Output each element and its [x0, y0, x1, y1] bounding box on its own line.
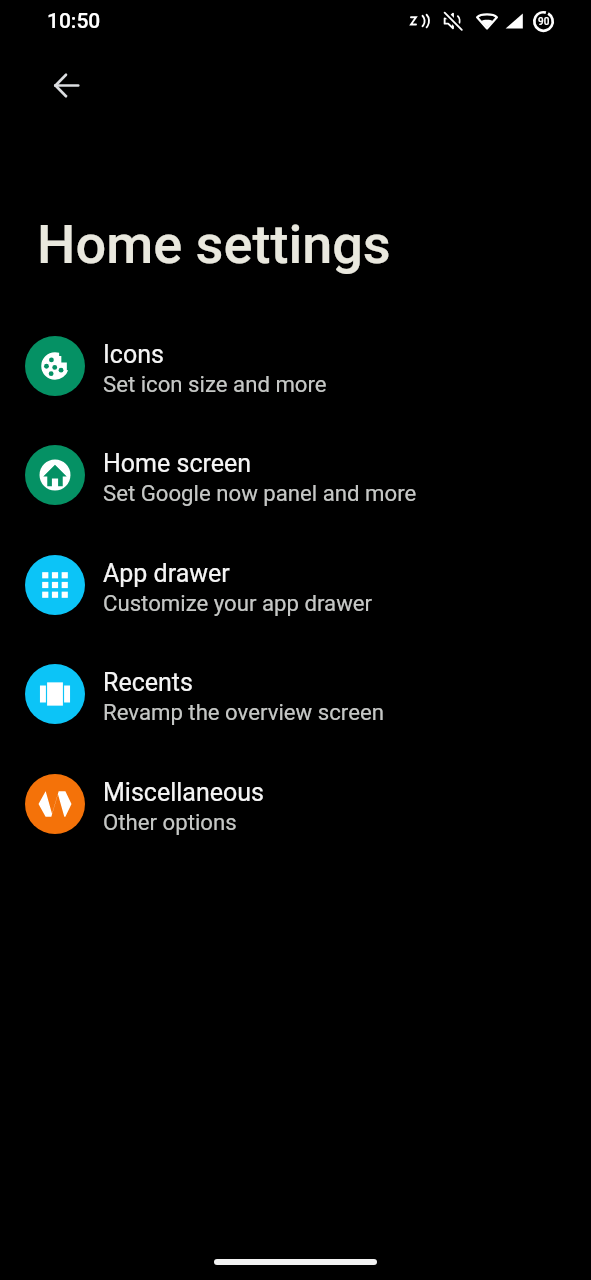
staticText: Icons — [103, 340, 164, 369]
staticText: Home screen — [103, 449, 252, 478]
staticText: Recents — [103, 668, 193, 697]
staticText: Set Google now panel and more — [103, 480, 417, 506]
staticText: 90 — [538, 16, 550, 28]
staticText: Revamp the overview screen — [103, 699, 384, 725]
button[interactable]: App drawer — [0, 530, 591, 640]
button[interactable]: Recents — [0, 639, 591, 749]
button[interactable]: Back — [42, 61, 90, 109]
staticText: 10:50 — [47, 9, 101, 34]
staticText: Customize your app drawer — [103, 590, 373, 616]
staticText: Miscellaneous — [103, 778, 264, 807]
button[interactable]: Icons — [0, 311, 591, 421]
staticText: Set icon size and more — [103, 371, 327, 397]
staticText: App drawer — [103, 559, 230, 588]
button[interactable]: Miscellaneous — [0, 749, 591, 859]
button[interactable]: Home screen — [0, 420, 591, 530]
staticText: Home settings — [37, 213, 391, 276]
staticText: Other options — [103, 809, 237, 835]
